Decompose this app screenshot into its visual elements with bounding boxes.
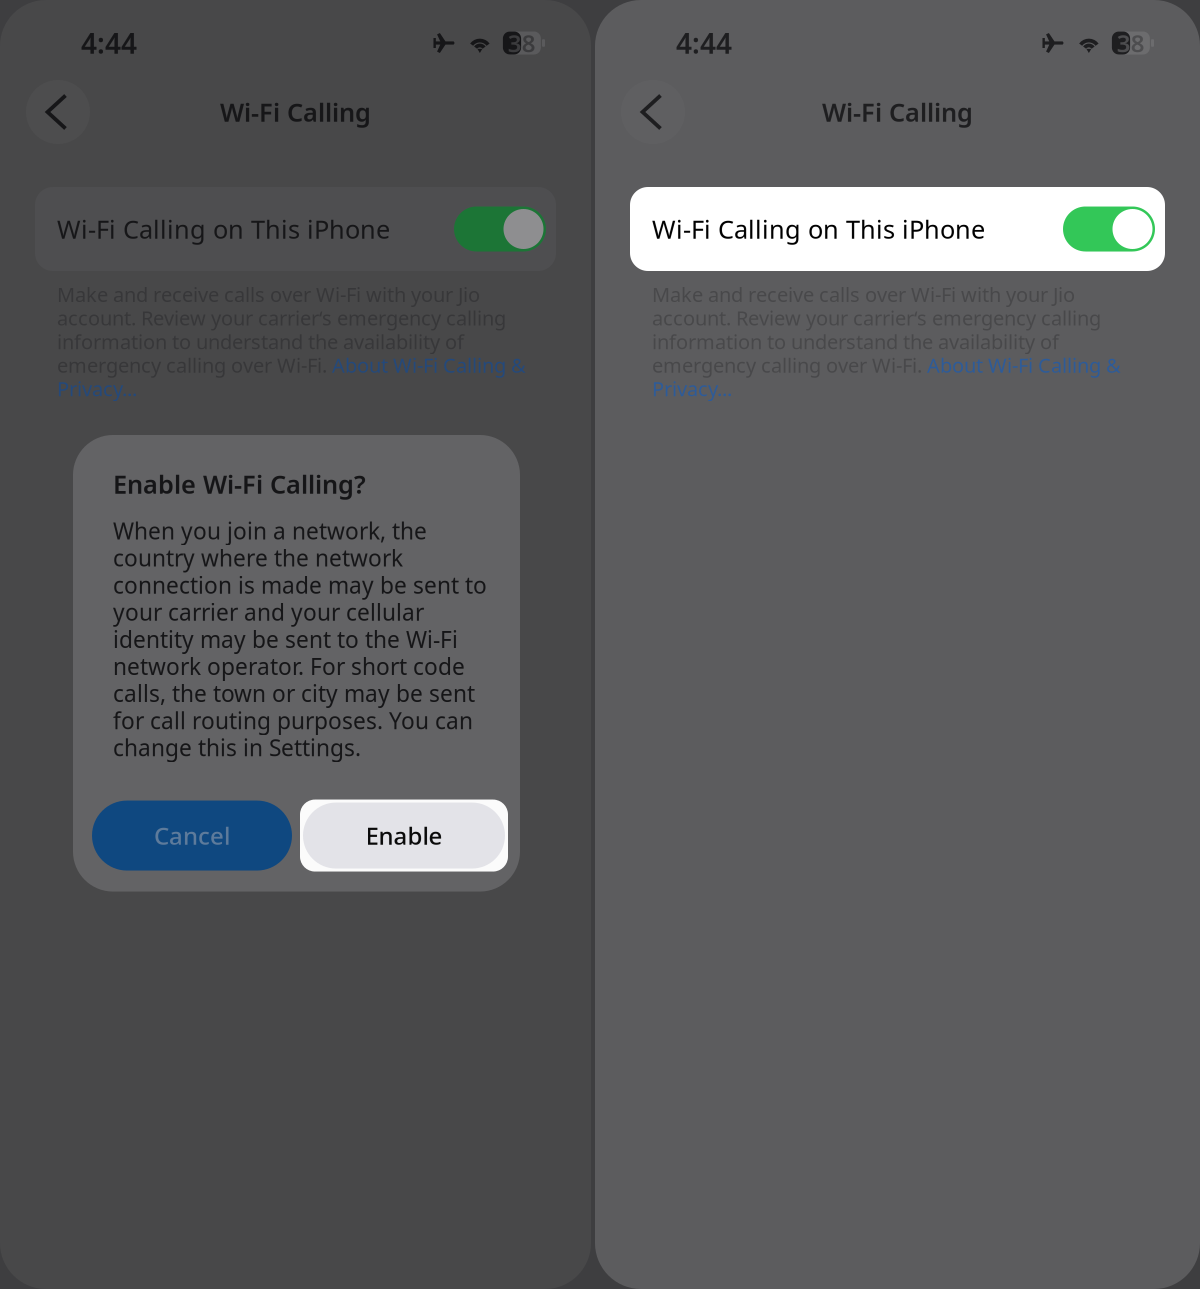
button[interactable]: Privacy... [57, 375, 137, 402]
staticText: Cancel [154, 820, 230, 851]
staticText: country where the network [113, 543, 403, 573]
button[interactable]: Wi-Fi Calling on This iPhone [35, 187, 556, 271]
button[interactable]: Cancel [92, 801, 292, 871]
staticText: your carrier and your cellular [113, 597, 424, 627]
staticText: Enable [365, 820, 442, 851]
staticText: 4:44 [676, 24, 732, 62]
button[interactable]: Wi-Fi Calling on This iPhone [630, 187, 1165, 271]
staticText: account. Review your carrier‘s emergency… [652, 305, 1101, 331]
staticText: for call routing purposes. You can [113, 705, 473, 735]
staticText: Privacy... [57, 375, 137, 402]
staticText: connection is made may be sent to [113, 570, 487, 600]
staticText: account. Review your carrier‘s emergency… [57, 305, 506, 331]
staticText: information to understand the availabili… [57, 328, 464, 355]
button[interactable]: About Wi-Fi Calling & [927, 352, 1121, 378]
staticText: When you join a network, the [113, 516, 427, 546]
button[interactable]: Back [619, 78, 687, 146]
staticText: calls, the town or city may be sent [113, 678, 475, 708]
button[interactable]: Back [24, 78, 92, 146]
staticText: Make and receive calls over Wi-Fi with y… [57, 281, 480, 308]
staticText: emergency calling over Wi-Fi. [652, 352, 927, 378]
staticText: Make and receive calls over Wi-Fi with y… [652, 281, 1075, 308]
staticText: 38 [508, 27, 536, 59]
staticText: Wi-Fi Calling on This iPhone [652, 212, 985, 246]
staticText: identity may be sent to the Wi-Fi [113, 624, 458, 654]
staticText: 38 [1117, 27, 1145, 59]
staticText: Wi-Fi Calling [822, 95, 973, 129]
staticText: emergency calling over Wi-Fi. [57, 352, 332, 378]
staticText: change this in Settings. [113, 732, 361, 763]
button[interactable]: About Wi-Fi Calling & [332, 352, 526, 378]
staticText: Wi-Fi Calling [220, 95, 371, 129]
staticText: About Wi-Fi Calling & [927, 352, 1121, 378]
staticText: About Wi-Fi Calling & [332, 352, 526, 378]
staticText: network operator. For short code [113, 651, 465, 681]
button[interactable]: Enable [300, 800, 508, 872]
staticText: Wi-Fi Calling on This iPhone [57, 212, 390, 246]
button[interactable]: Privacy... [652, 375, 732, 402]
staticText: Enable Wi-Fi Calling? [113, 467, 366, 501]
staticText: information to understand the availabili… [652, 328, 1059, 355]
staticText: 4:44 [81, 24, 137, 62]
staticText: Privacy... [652, 375, 732, 402]
